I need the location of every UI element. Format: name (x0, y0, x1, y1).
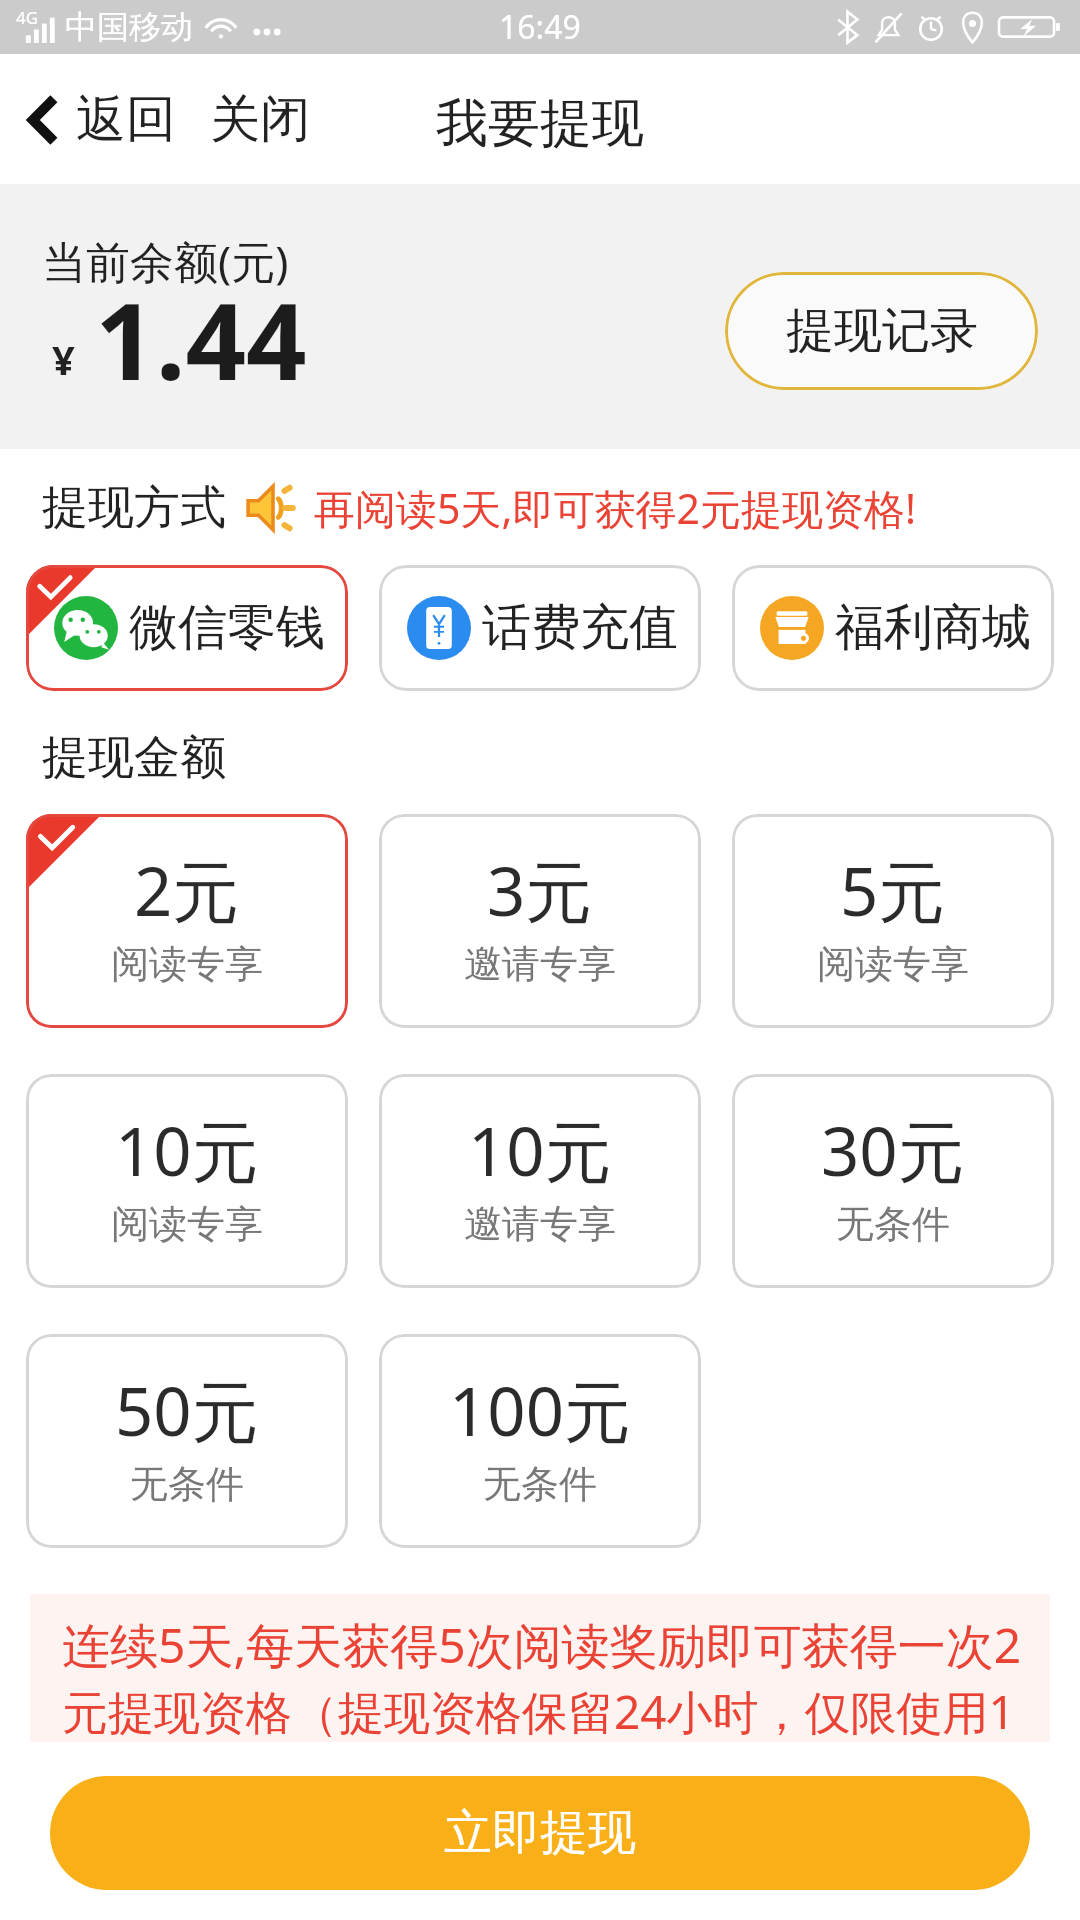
staticText: 提现方式 (42, 479, 226, 537)
button[interactable]: 关闭 (196, 72, 324, 167)
other: Back (26, 92, 60, 148)
staticText: 话费充值 (482, 597, 678, 659)
staticText: 福利商城 (835, 597, 1031, 659)
staticText: 16:49 (499, 5, 581, 49)
staticText: 30元 (821, 1104, 965, 1196)
button[interactable]: 立即提现 (50, 1776, 1030, 1890)
button[interactable]: 10元 (26, 1074, 348, 1288)
staticText: 邀请专享 (464, 940, 616, 988)
staticText: 3元 (487, 844, 593, 936)
button[interactable]: 5元 (732, 814, 1054, 1028)
staticText: 阅读专享 (111, 940, 263, 988)
button[interactable]: Back (0, 74, 186, 165)
staticText: 无条件 (483, 1460, 597, 1508)
staticText: 微信零钱 (129, 597, 325, 659)
staticText: 关闭 (210, 88, 310, 151)
staticText: 再阅读5天,即可获得2元提现资格! (314, 480, 916, 536)
button[interactable]: 话费充值 (379, 565, 701, 691)
button[interactable]: 提现记录 (725, 272, 1038, 390)
staticText: 无条件 (836, 1200, 950, 1248)
staticText: 5元 (840, 844, 946, 936)
staticText: 10元 (468, 1104, 612, 1196)
button[interactable]: 2元 (26, 814, 348, 1028)
staticText: 我要提现 (436, 91, 644, 157)
staticText: 10元 (115, 1104, 259, 1196)
staticText: 阅读专享 (111, 1200, 263, 1248)
staticText: 2元 (134, 844, 240, 936)
staticText: 4G (16, 6, 39, 29)
staticText: 当前余额(元) (42, 231, 289, 291)
button[interactable]: 福利商城 (732, 565, 1054, 691)
button[interactable]: 30元 (732, 1074, 1054, 1288)
staticText: 连续5天,每天获得5次阅读奖励即可获得一次2 (62, 1612, 1022, 1678)
staticText: 50元 (115, 1364, 259, 1456)
staticText: ¥ (52, 332, 75, 386)
staticText: 提现金额 (42, 729, 226, 787)
button[interactable]: 微信零钱 (26, 565, 348, 691)
staticText: 提现记录 (786, 301, 978, 361)
button[interactable]: 10元 (379, 1074, 701, 1288)
button[interactable]: 3元 (379, 814, 701, 1028)
staticText: 立即提现 (444, 1803, 636, 1863)
staticText: 无条件 (130, 1460, 244, 1508)
staticText: 返回 (76, 88, 176, 151)
staticText: 100元 (449, 1364, 631, 1456)
staticText: 阅读专享 (817, 940, 969, 988)
staticText: 邀请专享 (464, 1200, 616, 1248)
staticText: 元提现资格（提现资格保留24小时，仅限使用1 (62, 1680, 1015, 1742)
staticText: 1.44 (95, 267, 307, 411)
staticText: 中国移动 (65, 7, 193, 47)
button[interactable]: 100元 (379, 1334, 701, 1548)
button[interactable]: 50元 (26, 1334, 348, 1548)
